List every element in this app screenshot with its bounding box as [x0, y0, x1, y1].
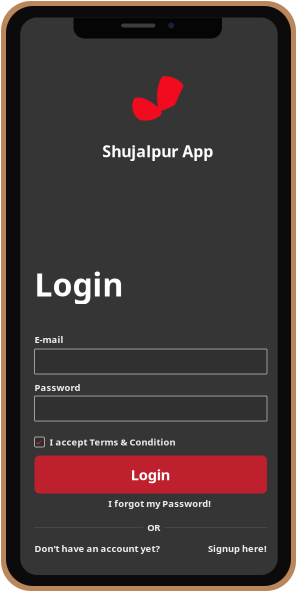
staticText: I accept Terms & Condition [49, 436, 175, 448]
staticText: Login [34, 263, 123, 305]
button[interactable]: I accept Terms & Condition [34, 436, 267, 447]
button[interactable]: Don't have an account yet? [34, 542, 159, 555]
staticText: Password [34, 381, 80, 394]
button[interactable]: Login [34, 455, 267, 493]
staticText: Shujalpur App [102, 140, 213, 162]
staticText: Login [131, 465, 171, 484]
button[interactable]: Signup here! [208, 542, 267, 555]
button[interactable]: I forgot my Password! [43, 498, 276, 508]
staticText: E-mail [34, 333, 63, 346]
staticText: Don't have an account yet? [34, 542, 159, 555]
staticText: OR [147, 521, 160, 534]
staticText: I forgot my Password! [108, 497, 211, 510]
staticText: Signup here! [208, 542, 267, 555]
